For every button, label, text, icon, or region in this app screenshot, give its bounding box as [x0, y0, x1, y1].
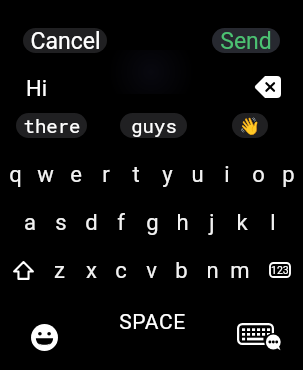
button[interactable]: b	[166, 256, 196, 286]
button[interactable]: r	[91, 160, 121, 190]
button[interactable]: e	[61, 160, 91, 190]
staticText: Hi	[26, 76, 48, 102]
staticText: SPACE	[119, 310, 186, 334]
button[interactable]: c	[106, 256, 136, 286]
button[interactable]: w	[30, 160, 60, 190]
staticText: v	[146, 258, 157, 284]
staticText: c	[115, 258, 127, 284]
staticText: g	[146, 210, 159, 236]
staticText: Send	[220, 28, 272, 53]
button[interactable]: Cancel	[23, 28, 107, 53]
button[interactable]: Emoji	[31, 324, 58, 351]
staticText: q	[9, 162, 22, 188]
button[interactable]: n	[197, 256, 227, 286]
button[interactable]: h	[167, 208, 197, 238]
staticText: s	[55, 210, 67, 236]
button[interactable]: v	[136, 256, 166, 286]
staticText: there	[23, 113, 81, 138]
staticText: k	[236, 210, 248, 236]
staticText: f	[117, 210, 125, 236]
staticText: n	[206, 258, 219, 284]
button[interactable]: f	[106, 208, 136, 238]
staticText: j	[209, 210, 215, 236]
staticText: p	[282, 162, 295, 188]
button[interactable]: Backspace	[254, 76, 281, 98]
button[interactable]: Numbers and symbols	[269, 262, 291, 278]
button[interactable]: x	[76, 256, 106, 286]
staticText: l	[270, 210, 276, 236]
button[interactable]: j	[197, 208, 227, 238]
button[interactable]: Waving hand emoji	[232, 113, 268, 138]
staticText: a	[24, 210, 36, 236]
button[interactable]: d	[76, 208, 106, 238]
button[interactable]: l	[258, 208, 288, 238]
button[interactable]: there	[16, 113, 87, 138]
button[interactable]: p	[273, 160, 303, 190]
staticText: z	[54, 258, 65, 284]
button[interactable]: q	[0, 160, 30, 190]
button[interactable]: Send	[212, 28, 280, 53]
staticText: y	[162, 162, 173, 188]
button[interactable]: i	[212, 160, 242, 190]
button[interactable]: t	[121, 160, 151, 190]
staticText: w	[37, 162, 54, 188]
staticText: guys	[131, 113, 177, 138]
button[interactable]: s	[46, 208, 76, 238]
staticText: x	[86, 258, 97, 284]
staticText: 123	[271, 264, 289, 276]
staticText: t	[132, 162, 140, 188]
button[interactable]: guys	[120, 113, 187, 138]
button[interactable]: g	[137, 208, 167, 238]
staticText: u	[191, 162, 204, 188]
staticText: r	[102, 162, 110, 188]
button[interactable]: a	[15, 208, 45, 238]
staticText: 👋	[239, 116, 261, 136]
button[interactable]: o	[243, 160, 273, 190]
staticText: Cancel	[30, 28, 101, 53]
button[interactable]: Switch keyboard	[237, 323, 281, 349]
staticText: i	[224, 162, 230, 188]
button[interactable]: Shift	[13, 261, 34, 280]
staticText: d	[85, 210, 98, 236]
button[interactable]: u	[182, 160, 212, 190]
button[interactable]: y	[152, 160, 182, 190]
button[interactable]: SPACE	[110, 310, 195, 334]
button[interactable]: z	[44, 256, 74, 286]
staticText: m	[230, 258, 250, 284]
staticText: b	[175, 258, 188, 284]
button[interactable]: m	[225, 256, 255, 286]
staticText: e	[70, 162, 82, 188]
staticText: h	[176, 210, 189, 236]
button[interactable]: k	[227, 208, 257, 238]
staticText: o	[252, 162, 265, 188]
